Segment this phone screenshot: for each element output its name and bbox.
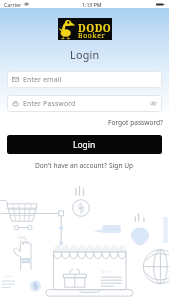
staticText: Login [73,139,96,151]
other: Show password [150,100,157,107]
staticText: Login [70,47,100,62]
button[interactable]: Login [7,135,162,154]
button[interactable]: Enter email [12,71,157,88]
staticText: DODO [78,21,112,35]
button[interactable]: Sign Up [109,161,134,170]
staticText: 1:13 PM [82,1,102,8]
button[interactable]: Enter Password [12,95,157,112]
staticText: Enter email [23,75,62,84]
staticText: Enter Password [23,99,76,108]
staticText: Don't have an account? [35,161,109,170]
button[interactable]: Forgot password? [108,118,169,127]
staticText: Carrier [4,1,22,8]
staticText: Booker [78,31,106,40]
